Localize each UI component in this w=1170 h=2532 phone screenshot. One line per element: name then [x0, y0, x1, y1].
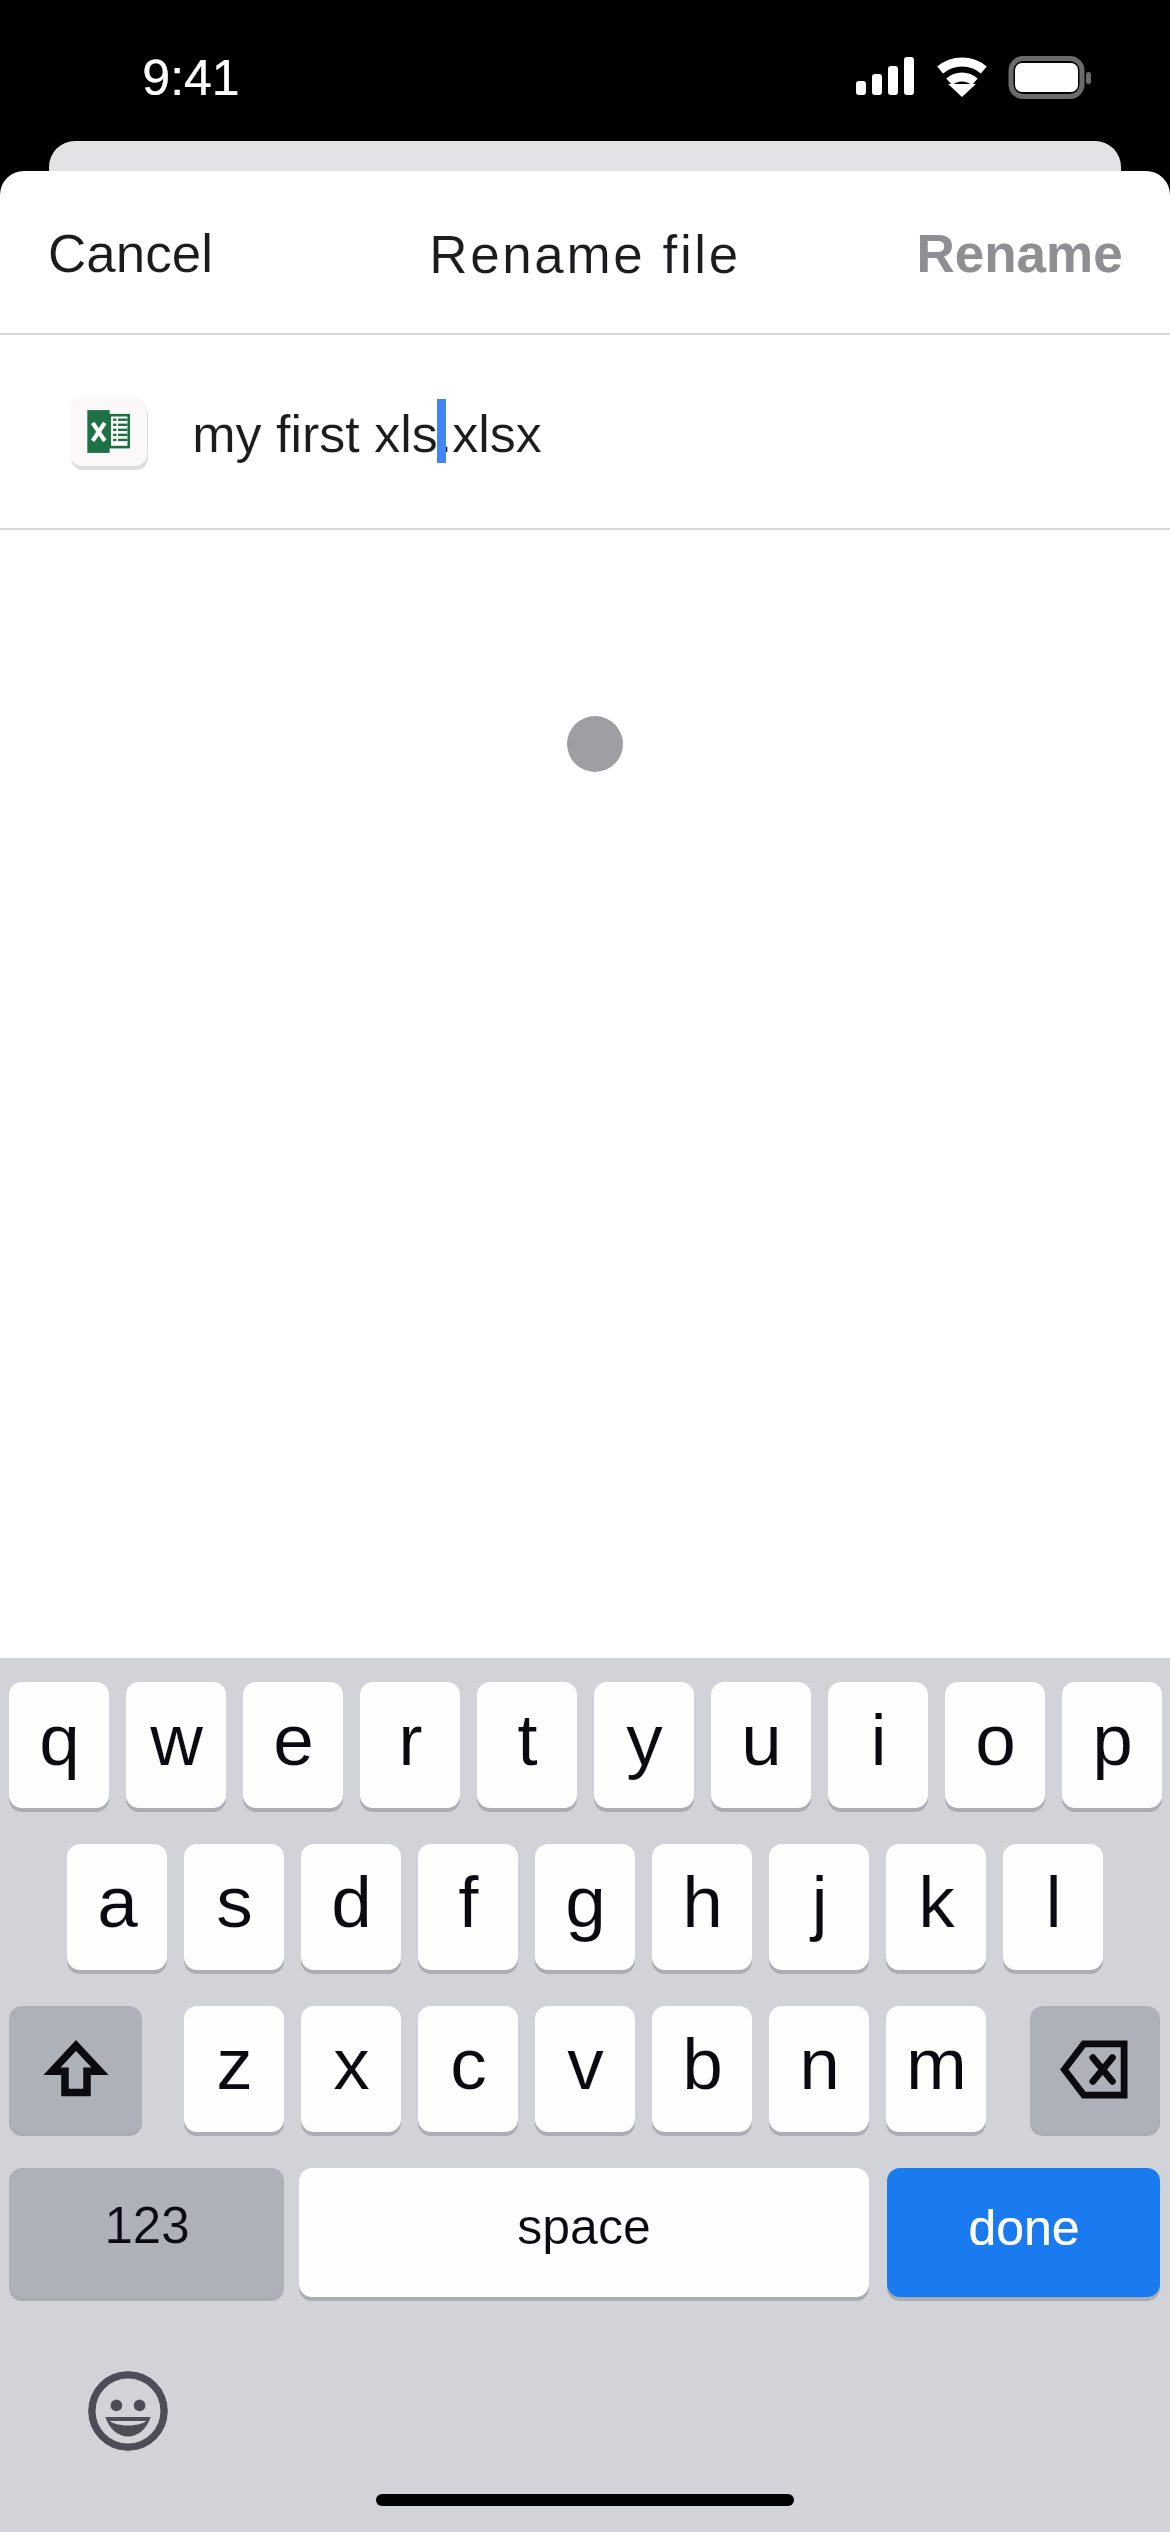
button[interactable]: my first xls.xlsx: [0, 335, 1170, 528]
staticText: n: [799, 2023, 840, 2105]
staticText: 9:41: [142, 50, 240, 106]
staticText: my first xls.xlsx: [192, 405, 542, 463]
button[interactable]: m: [886, 2006, 986, 2132]
button[interactable]: 123: [9, 2168, 284, 2297]
staticText: l: [1045, 1861, 1062, 1943]
staticText: b: [682, 2023, 723, 2105]
button[interactable]: j: [769, 1844, 869, 1970]
button[interactable]: done: [887, 2168, 1160, 2297]
staticText: 123: [104, 2197, 190, 2254]
button[interactable]: Rename: [899, 204, 1140, 303]
staticText: r: [398, 1699, 423, 1781]
button[interactable]: a: [67, 1844, 167, 1970]
staticText: Rename: [916, 224, 1123, 283]
button[interactable]: n: [769, 2006, 869, 2132]
button[interactable]: f: [418, 1844, 518, 1970]
staticText: done: [968, 2200, 1080, 2256]
staticText: m: [906, 2023, 967, 2105]
button[interactable]: u: [711, 1682, 811, 1808]
staticText: x: [333, 2023, 370, 2105]
button[interactable]: i: [828, 1682, 928, 1808]
staticText: s: [216, 1861, 253, 1943]
staticText: h: [682, 1861, 723, 1943]
button[interactable]: b: [652, 2006, 752, 2132]
staticText: t: [517, 1699, 538, 1781]
staticText: e: [273, 1699, 314, 1781]
staticText: g: [565, 1861, 606, 1943]
button[interactable]: c: [418, 2006, 518, 2132]
staticText: k: [918, 1861, 955, 1943]
button[interactable]: space: [299, 2168, 869, 2297]
button[interactable]: k: [886, 1844, 986, 1970]
button[interactable]: p: [1062, 1682, 1162, 1808]
button[interactable]: Cancel: [31, 204, 230, 303]
button[interactable]: o: [945, 1682, 1045, 1808]
staticText: p: [1092, 1699, 1133, 1781]
button[interactable]: z: [184, 2006, 284, 2132]
staticText: o: [975, 1699, 1016, 1781]
button[interactable]: v: [535, 2006, 635, 2132]
button[interactable]: s: [184, 1844, 284, 1970]
button[interactable]: r: [360, 1682, 460, 1808]
staticText: Rename file: [429, 225, 741, 284]
staticText: space: [517, 2199, 651, 2255]
staticText: f: [458, 1861, 479, 1943]
button[interactable]: Emoji keyboard: [88, 2371, 168, 2451]
staticText: z: [216, 2023, 253, 2105]
staticText: y: [626, 1699, 663, 1781]
button[interactable]: Backspace: [1030, 2006, 1160, 2132]
button[interactable]: Shift: [9, 2006, 142, 2132]
button[interactable]: g: [535, 1844, 635, 1970]
button[interactable]: h: [652, 1844, 752, 1970]
button[interactable]: y: [594, 1682, 694, 1808]
staticText: d: [331, 1861, 372, 1943]
button[interactable]: t: [477, 1682, 577, 1808]
staticText: v: [567, 2023, 604, 2105]
staticText: a: [97, 1861, 138, 1943]
staticText: u: [741, 1699, 782, 1781]
staticText: w: [150, 1699, 203, 1781]
button[interactable]: x: [301, 2006, 401, 2132]
button[interactable]: d: [301, 1844, 401, 1970]
staticText: q: [39, 1699, 80, 1781]
staticText: Cancel: [48, 224, 213, 283]
button[interactable]: w: [126, 1682, 226, 1808]
staticText: j: [811, 1861, 828, 1943]
button[interactable]: l: [1003, 1844, 1103, 1970]
button[interactable]: q: [9, 1682, 109, 1808]
staticText: c: [450, 2023, 487, 2105]
staticText: i: [870, 1699, 887, 1781]
button[interactable]: e: [243, 1682, 343, 1808]
